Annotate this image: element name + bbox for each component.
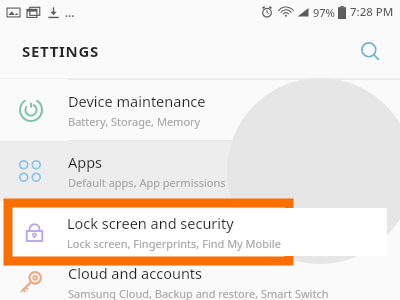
staticText: Default apps, App permissions	[68, 175, 226, 190]
button[interactable]: Cloud and accounts	[0, 263, 400, 300]
staticText: Samsung Cloud, Backup and restore, Smart…	[68, 286, 329, 300]
staticText: 97%	[313, 5, 335, 20]
staticText: …	[65, 5, 75, 20]
staticText: SETTINGS	[22, 41, 100, 61]
staticText: Lock screen, Fingerprints, Find My Mobil…	[67, 236, 281, 251]
staticText: 7:28 PM	[350, 4, 394, 20]
button[interactable]: Device maintenance	[0, 80, 400, 140]
button[interactable]: Search	[350, 31, 390, 71]
staticText: Apps	[68, 152, 103, 172]
staticText: Battery, Storage, Memory	[68, 114, 201, 129]
staticText: Cloud and accounts	[68, 263, 203, 283]
staticText: Lock screen and security	[67, 213, 234, 233]
staticText: Device maintenance	[68, 91, 206, 111]
